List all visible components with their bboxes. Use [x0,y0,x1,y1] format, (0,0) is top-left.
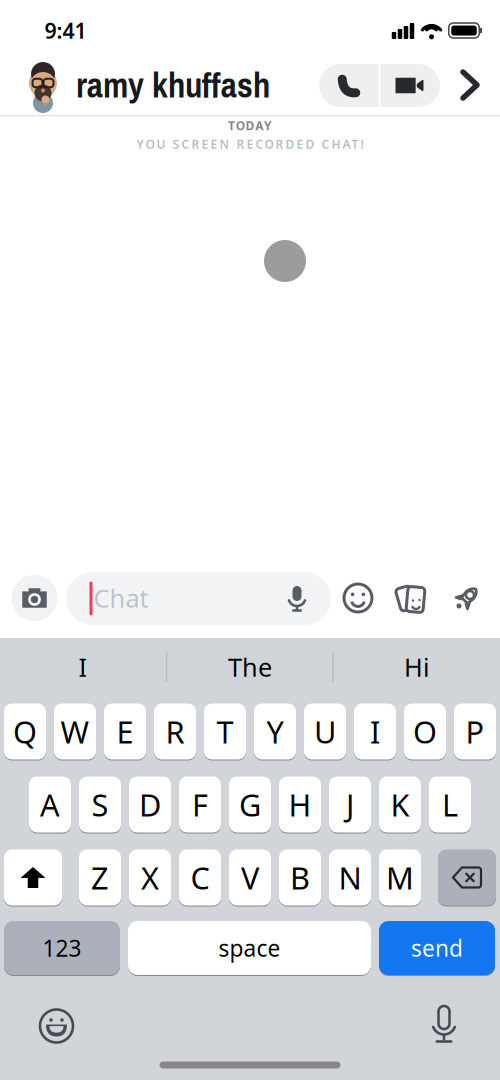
button[interactable]: Call [319,64,379,107]
button[interactable]: M [379,849,421,906]
button[interactable]: K [379,776,421,833]
staticText: ramy khuffash [76,62,270,108]
staticText: TODAY [228,117,272,133]
button[interactable]: L [429,776,471,833]
staticText: 123 [42,933,81,963]
staticText: A [40,784,60,825]
staticText: Q [13,711,37,752]
staticText: M [386,857,414,898]
staticText: C [190,857,209,898]
staticText: P [465,711,484,752]
button[interactable]: I [3,643,163,691]
button[interactable]: Q [4,703,46,760]
button[interactable]: Delete [438,849,496,906]
button[interactable]: Dictation [429,1004,459,1044]
button[interactable]: W [54,703,96,760]
staticText: space [218,933,280,963]
button[interactable]: Video call [379,64,439,107]
button[interactable]: A [29,776,71,833]
button[interactable]: Camera [11,575,57,621]
button[interactable]: I [354,703,396,760]
staticText: Y [266,711,283,752]
button[interactable]: Profile [22,60,64,112]
staticText: N [338,857,361,898]
button[interactable]: X [129,849,171,906]
button[interactable]: V [229,849,271,906]
button[interactable]: O [404,703,446,760]
button[interactable]: P [454,703,496,760]
button[interactable]: Hi [337,643,497,691]
staticText: L [442,784,458,825]
button[interactable]: Emoji [38,1008,74,1044]
staticText: D [139,784,161,825]
button[interactable]: Games [450,581,484,615]
button[interactable]: Y [254,703,296,760]
staticText: T [216,711,233,752]
button[interactable]: N [329,849,371,906]
staticText: R [165,711,184,752]
staticText: K [390,784,409,825]
staticText: W [60,711,89,752]
button[interactable]: space [128,920,371,975]
button[interactable]: send [379,920,495,975]
staticText: Z [91,857,109,898]
button[interactable]: B [279,849,321,906]
button[interactable]: T [204,703,246,760]
staticText: I [370,711,380,752]
button[interactable]: The [170,643,330,691]
staticText: B [290,857,310,898]
staticText: The [228,650,272,684]
button[interactable]: Z [79,849,121,906]
button[interactable]: C [179,849,221,906]
staticText: J [346,784,354,825]
staticText: G [239,784,261,825]
staticText: U [314,711,336,752]
button[interactable]: R [154,703,196,760]
staticText: O [413,711,437,752]
button[interactable]: Shift [4,849,62,906]
staticText: S [91,784,108,825]
staticText: I [78,650,87,684]
staticText: V [241,857,259,898]
staticText: send [411,933,463,963]
staticText: E [116,711,133,752]
button[interactable]: E [104,703,146,760]
button[interactable]: F [179,776,221,833]
button[interactable]: Memories [394,582,428,614]
staticText: F [192,784,208,825]
button[interactable]: Chat text field [66,572,331,625]
staticText: YOU SCREEN RECORDED CHAT! [136,136,363,152]
button[interactable]: D [129,776,171,833]
button[interactable]: Open conversation details [455,63,485,106]
staticText: 9:41 [44,16,86,45]
button[interactable]: U [304,703,346,760]
button[interactable]: G [229,776,271,833]
button[interactable]: Stickers [343,583,373,613]
staticText: X [141,857,159,898]
staticText: Chat [93,581,148,615]
button[interactable]: 123 [4,920,120,975]
button[interactable]: S [79,776,121,833]
button[interactable]: J [329,776,371,833]
button[interactable]: H [279,776,321,833]
staticText: H [288,784,311,825]
staticText: Hi [404,650,430,684]
